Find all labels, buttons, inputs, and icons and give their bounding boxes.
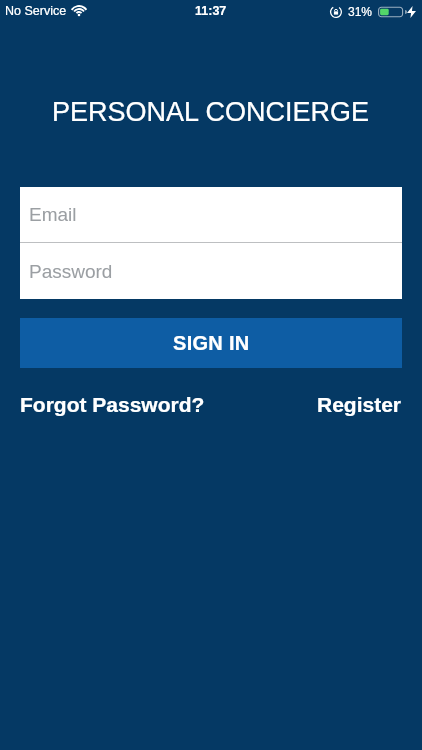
staticText: Forgot Password? [20,393,205,416]
staticText: Email [29,204,77,225]
button[interactable]: Register [317,393,402,416]
staticText: Register [317,393,402,416]
staticText: No Service [5,4,67,18]
button[interactable]: Password [20,243,402,299]
staticText: 11:37 [195,4,227,18]
staticText: PERSONAL CONCIERGE [52,97,370,127]
staticText: SIGN IN [173,332,250,354]
button[interactable]: SIGN IN [20,318,402,368]
button[interactable]: Email [20,187,402,242]
button[interactable]: Forgot Password? [20,393,205,416]
staticText: Password [29,261,113,282]
staticText: 31% [348,5,373,18]
